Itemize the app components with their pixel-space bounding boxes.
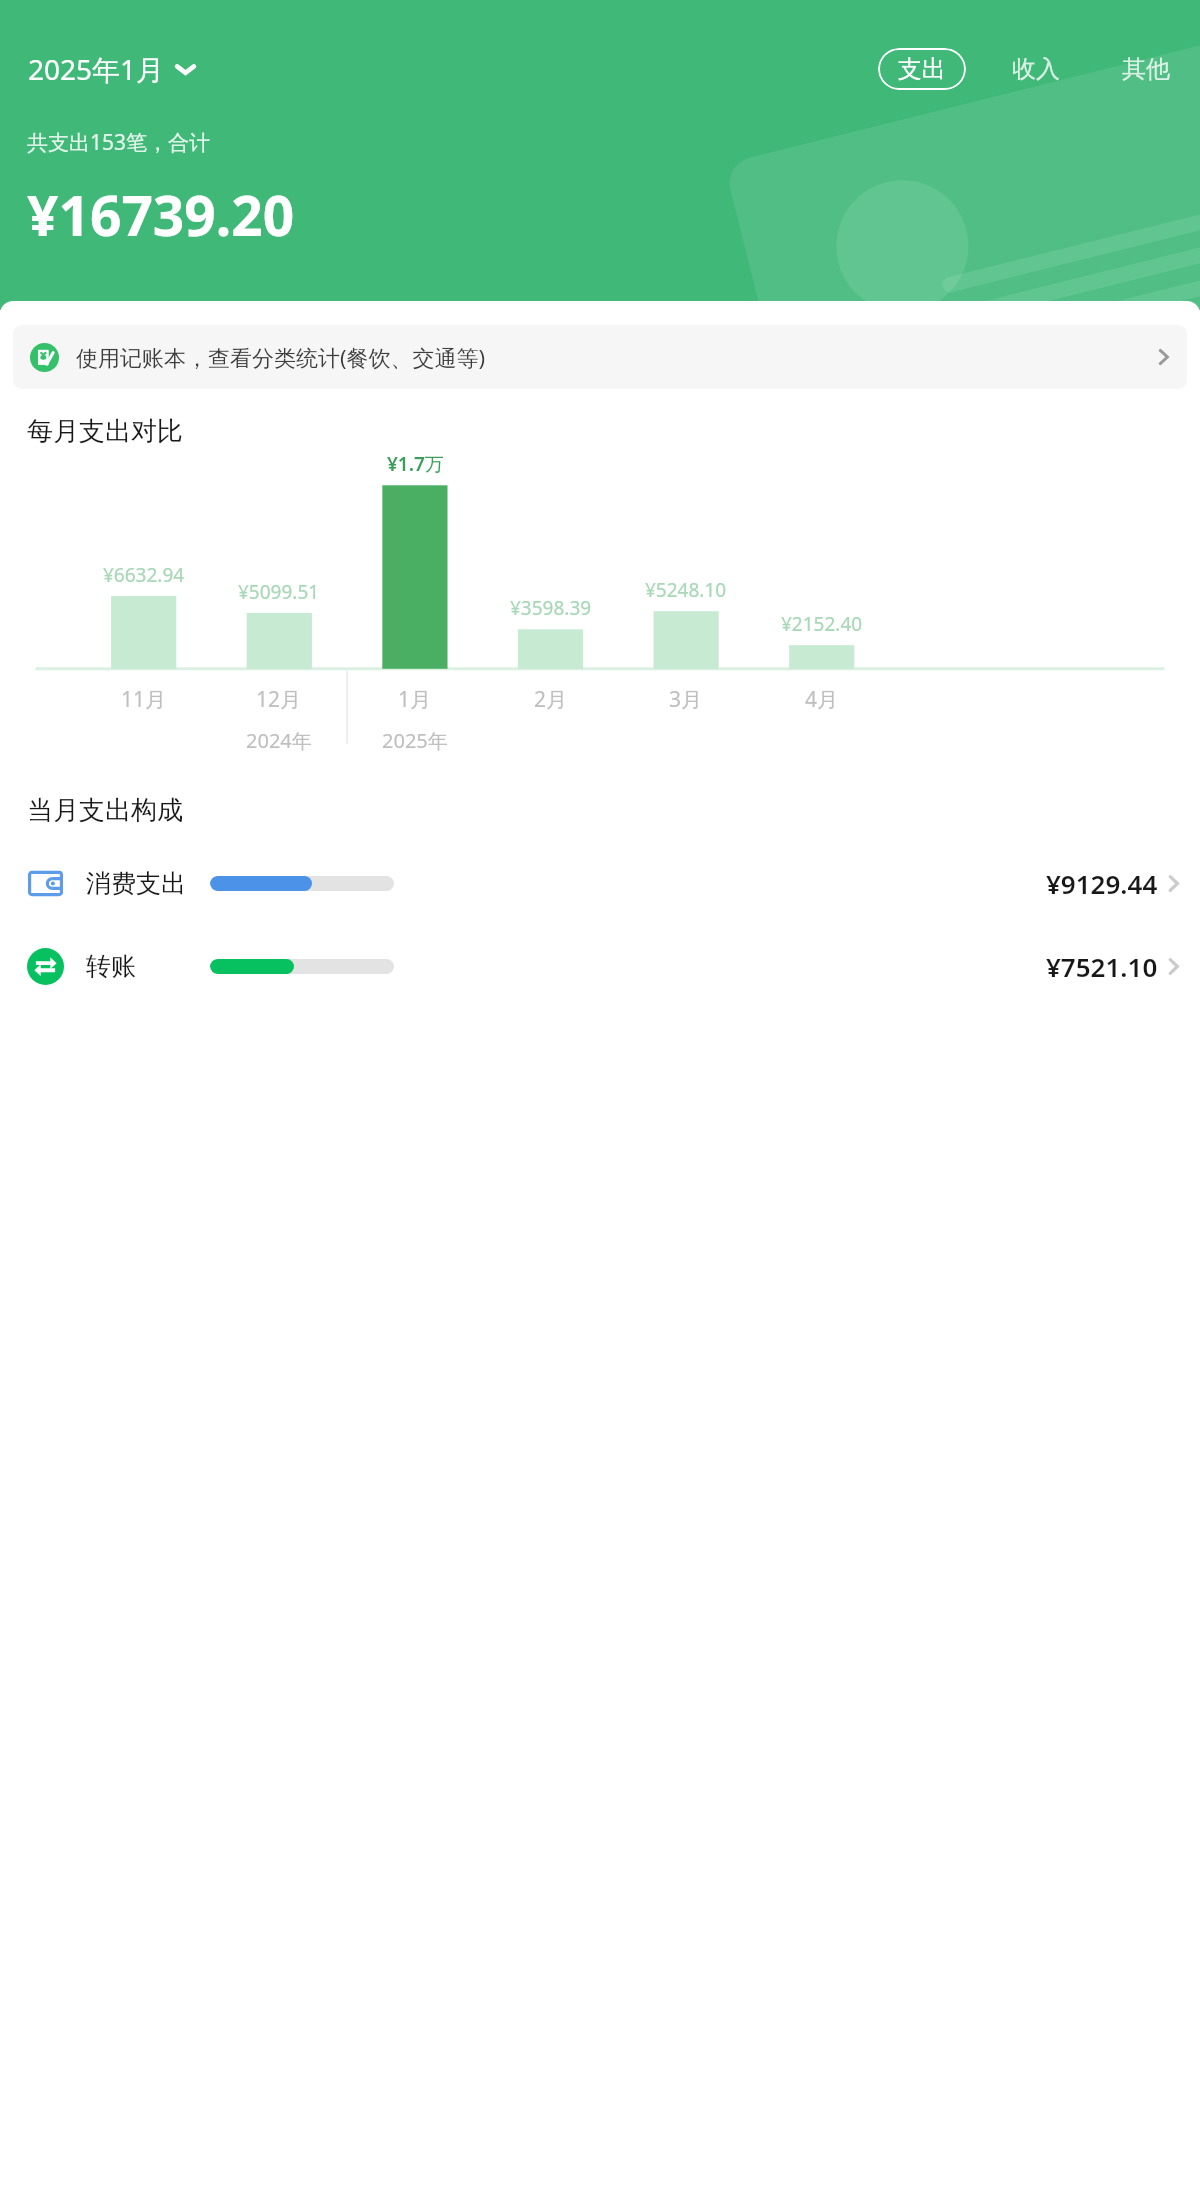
staticText: ¥5099.51: [238, 579, 320, 605]
button[interactable]: 收入: [1004, 46, 1068, 92]
staticText: 每月支出对比: [27, 415, 183, 448]
staticText: ¥2152.40: [781, 611, 863, 637]
button[interactable]: 支出: [878, 48, 966, 90]
button[interactable]: 转账: [0, 936, 1200, 997]
staticText: 支出: [898, 54, 946, 84]
staticText: 1月: [398, 685, 432, 714]
staticText: 2024年: [246, 727, 312, 754]
staticText: 12月: [256, 685, 302, 714]
staticText: 消费支出: [86, 868, 186, 899]
button[interactable]: 2025年1月: [22, 44, 202, 94]
button[interactable]: 消费支出: [0, 853, 1200, 914]
staticText: 其他: [1122, 54, 1170, 84]
button[interactable]: 使用记账本，查看分类统计(餐饮、交通等): [13, 325, 1187, 389]
staticText: 3月: [669, 685, 703, 714]
staticText: 4月: [805, 685, 839, 714]
staticText: 2月: [534, 685, 568, 714]
staticText: 当月支出构成: [27, 794, 183, 827]
staticText: 共支出153笔，合计: [27, 128, 211, 157]
staticText: 2025年: [382, 727, 448, 754]
button[interactable]: 其他: [1114, 46, 1178, 92]
staticText: 使用记账本，查看分类统计(餐饮、交通等): [76, 342, 486, 372]
staticText: ¥1.7万: [387, 451, 444, 477]
staticText: ¥3598.39: [510, 595, 592, 621]
staticText: ¥5248.10: [645, 577, 727, 603]
staticText: ¥16739.20: [27, 177, 295, 252]
staticText: ¥6632.94: [103, 562, 185, 588]
staticText: 11月: [121, 685, 167, 714]
staticText: ¥7521.10: [1046, 949, 1158, 984]
staticText: 收入: [1012, 54, 1060, 84]
staticText: 2025年1月: [28, 50, 165, 88]
staticText: 转账: [86, 951, 136, 982]
staticText: ¥9129.44: [1046, 866, 1158, 901]
